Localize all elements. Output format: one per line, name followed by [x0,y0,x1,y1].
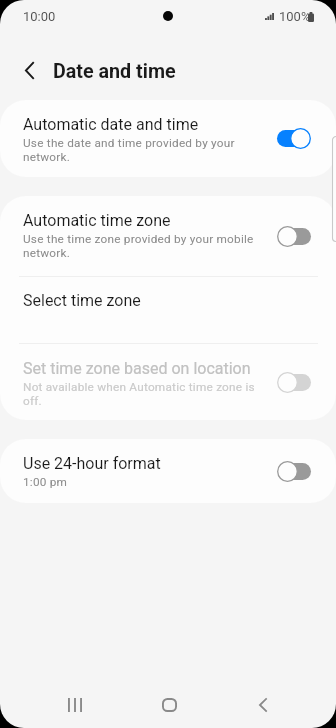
staticText: Use the date and time provided by your n… [23,136,235,164]
staticText: Select time zone [23,291,141,310]
button[interactable]: Toggle off [277,372,311,393]
staticText: 1:00 pm [23,475,68,489]
button[interactable]: Back [235,677,291,728]
button[interactable]: Use 24-hour format [0,439,336,474]
button[interactable]: Set time zone based on location [0,344,336,393]
button[interactable]: Recent apps [47,677,103,728]
staticText: 10:00 [23,9,56,24]
button[interactable]: Automatic time zone [0,196,336,245]
staticText: Date and time [53,60,176,83]
button[interactable]: Automatic date and time [0,100,336,149]
staticText: Not available when Automatic time zone i… [23,380,255,408]
button[interactable]: Toggle on [277,128,311,149]
button[interactable]: Select time zone [0,277,336,343]
staticText: Use 24-hour format [23,454,161,473]
button[interactable]: Home [141,677,197,728]
staticText: Use the time zone provided by your mobil… [23,232,254,260]
button[interactable]: Toggle off [277,461,311,482]
button[interactable]: Toggle off [277,226,311,247]
staticText: Set time zone based on location [23,359,251,378]
button[interactable]: Navigate up [5,46,53,94]
staticText: Automatic date and time [23,115,199,134]
staticText: 100% [279,9,311,24]
staticText: Automatic time zone [23,211,171,230]
